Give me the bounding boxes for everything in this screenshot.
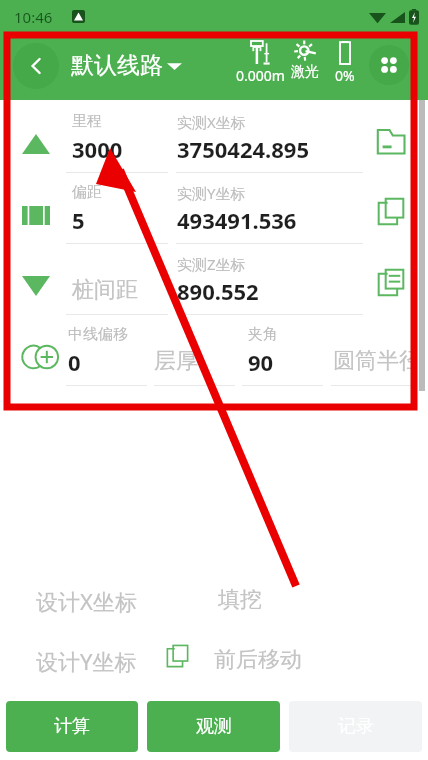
button[interactable]: Back	[13, 43, 59, 89]
staticText: 90	[248, 347, 274, 377]
button[interactable]: 偏距	[66, 173, 168, 244]
staticText: 层厚	[154, 347, 198, 375]
button[interactable]: Offset	[19, 200, 53, 230]
button[interactable]: 填挖	[218, 586, 262, 614]
staticText: 里程	[72, 112, 102, 131]
button[interactable]: 设计Y坐标	[36, 646, 137, 676]
staticText: 计算	[54, 715, 90, 738]
button[interactable]: 里程	[66, 102, 168, 173]
button[interactable]: 桩间距	[66, 244, 168, 315]
staticText: 圆筒半径	[333, 347, 414, 375]
button[interactable]: 0.000m	[236, 38, 284, 88]
staticText: 记录	[338, 715, 374, 738]
staticText: 5	[72, 205, 85, 235]
button[interactable]: More options	[369, 45, 409, 85]
staticText: 桩间距	[72, 276, 138, 304]
button[interactable]: Decrease station	[19, 271, 53, 301]
button[interactable]: 设计X坐标	[36, 586, 137, 616]
staticText: 0.000m	[236, 66, 284, 85]
staticText: 激光	[291, 63, 319, 81]
button[interactable]: 前后移动	[214, 646, 302, 674]
button[interactable]: Increase station	[19, 129, 53, 159]
staticText: 3000	[72, 134, 123, 164]
staticText: 0%	[335, 66, 355, 85]
staticText: 实测X坐标	[177, 112, 246, 132]
button[interactable]: 圆筒半径	[331, 315, 412, 386]
button[interactable]: Add offset	[19, 342, 53, 372]
staticText: 实测Y坐标	[177, 183, 246, 203]
button[interactable]: 夹角	[242, 315, 323, 386]
staticText: 夹角	[248, 325, 278, 344]
button[interactable]: Copy	[372, 263, 410, 301]
staticText: 890.552	[177, 276, 259, 306]
staticText: 3750424.895	[177, 134, 310, 164]
button[interactable]: 计算	[6, 701, 138, 752]
button[interactable]: 观测	[147, 701, 280, 752]
button[interactable]: 0%	[329, 38, 361, 88]
button[interactable]: Open file	[372, 121, 410, 159]
staticText: 观测	[196, 715, 232, 738]
staticText: 0	[68, 347, 81, 377]
staticText: 493491.536	[177, 205, 297, 235]
button[interactable]: Copy	[162, 640, 193, 671]
button[interactable]: 层厚	[154, 315, 235, 386]
staticText: 10:46	[14, 7, 53, 27]
staticText: 实测Z坐标	[177, 254, 246, 274]
button[interactable]: 实测Z坐标	[176, 244, 363, 315]
staticText: 默认线路	[71, 51, 163, 80]
staticText: 中线偏移	[68, 325, 128, 344]
button[interactable]: 实测X坐标	[176, 102, 363, 173]
button[interactable]: 激光	[287, 38, 323, 84]
button[interactable]: 实测Y坐标	[176, 173, 363, 244]
button[interactable]: 中线偏移	[66, 315, 147, 386]
staticText: 偏距	[72, 183, 102, 202]
button[interactable]: Copy	[372, 192, 410, 230]
button[interactable]: 默认线路	[71, 51, 182, 80]
